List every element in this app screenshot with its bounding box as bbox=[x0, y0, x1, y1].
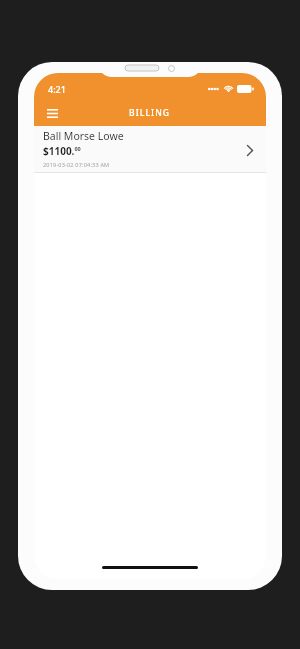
button[interactable]: Open navigation menu bbox=[41, 102, 63, 124]
staticText: BILLING bbox=[129, 107, 171, 119]
staticText: 4:21 bbox=[48, 83, 66, 95]
staticText: 2019-03-02 07:04:33 AM bbox=[43, 161, 110, 168]
staticText: $1100.00 bbox=[43, 144, 81, 158]
button[interactable]: View invoice details bbox=[240, 140, 260, 160]
staticText: Ball Morse Lowe bbox=[43, 129, 124, 143]
button[interactable]: Ball Morse Lowe bbox=[34, 126, 266, 173]
